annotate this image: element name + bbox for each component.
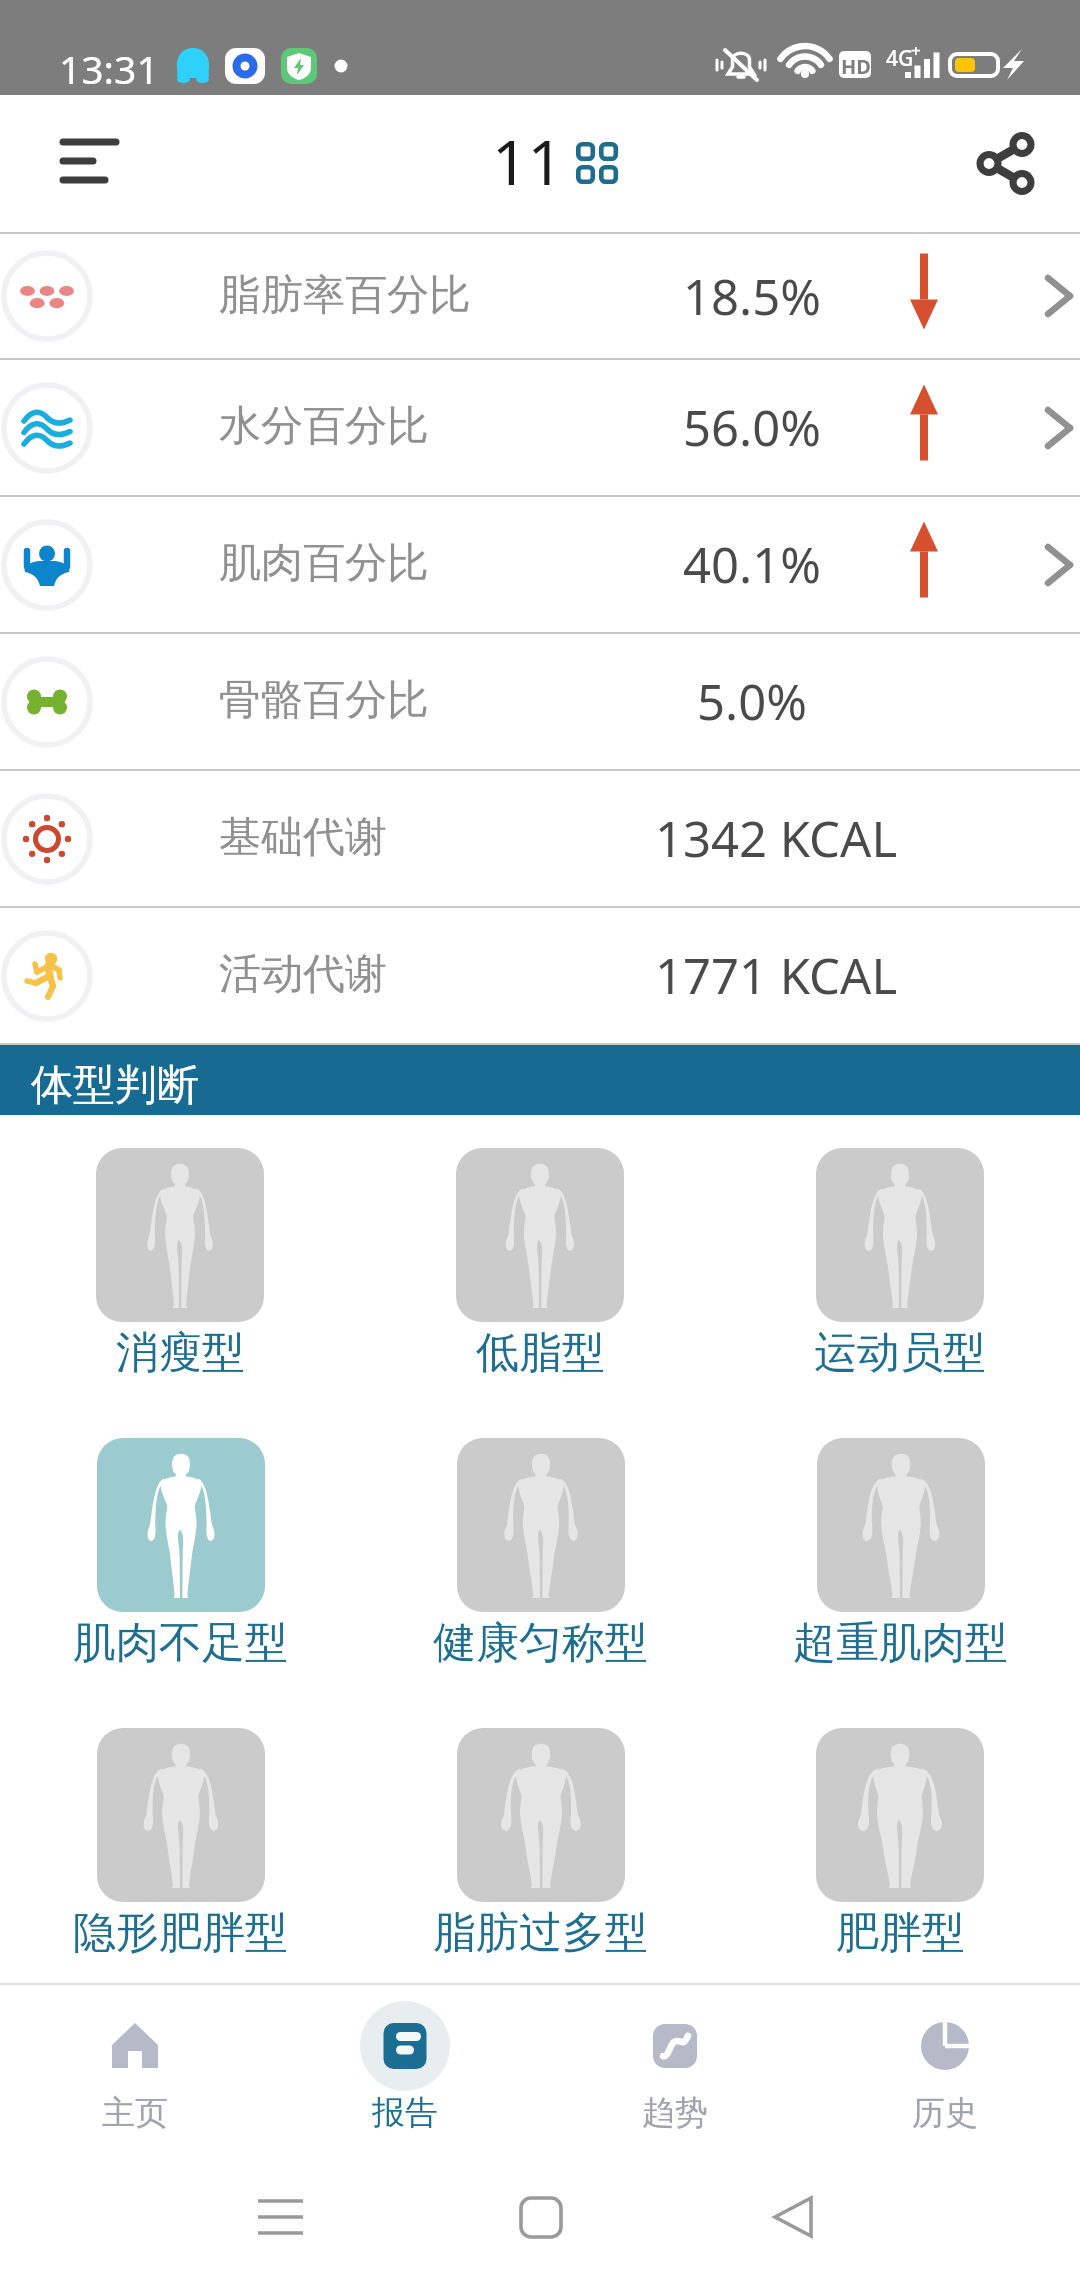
button[interactable]: Menu [0, 95, 120, 232]
staticText: 趋势 [642, 2092, 708, 2134]
button[interactable]: 健康匀称型 [370, 1438, 710, 1670]
button[interactable]: 消瘦型 [10, 1148, 350, 1380]
staticText: 1771 KCAL [581, 942, 971, 1009]
staticText: 肌肉不足型 [73, 1616, 288, 1670]
button[interactable]: Recent apps [221, 2161, 341, 2271]
staticText: 脂肪过多型 [433, 1906, 648, 1960]
staticText: 13:31 [59, 42, 159, 95]
staticText: 4G [886, 44, 914, 73]
button[interactable]: 肌肉不足型 [10, 1438, 350, 1670]
staticText: 18.5% [557, 263, 947, 330]
button[interactable]: 活动代谢 [0, 908, 1080, 1043]
staticText: 1342 KCAL [581, 805, 971, 872]
staticText: 肌肉百分比 [219, 537, 429, 590]
button[interactable]: 隐形肥胖型 [10, 1728, 350, 1960]
button[interactable]: 低脂型 [370, 1148, 710, 1380]
button[interactable]: 基础代谢 [0, 771, 1080, 906]
button[interactable]: 水分百分比 [0, 360, 1080, 495]
staticText: 水分百分比 [219, 400, 429, 453]
button[interactable]: 报告 [270, 1985, 540, 2152]
button[interactable]: 脂肪过多型 [370, 1728, 710, 1960]
button[interactable]: 骨骼百分比 [0, 634, 1080, 769]
staticText: 主页 [102, 2092, 168, 2134]
staticText: + [911, 39, 921, 62]
staticText: 5.0% [557, 668, 947, 735]
button[interactable]: 脂肪率百分比 [0, 234, 1080, 358]
button[interactable]: Switch user 11 [492, 120, 618, 204]
staticText: 脂肪率百分比 [219, 269, 471, 322]
staticText: 体型判断 [31, 1059, 199, 1112]
staticText: 肥胖型 [836, 1906, 965, 1960]
staticText: 活动代谢 [219, 948, 387, 1001]
staticText: 报告 [372, 2092, 438, 2134]
button[interactable]: 肌肉百分比 [0, 497, 1080, 632]
staticText: 历史 [912, 2092, 978, 2134]
staticText: 运动员型 [814, 1326, 986, 1380]
button[interactable]: 主页 [0, 1985, 270, 2152]
staticText: 健康匀称型 [433, 1616, 648, 1670]
staticText: 基础代谢 [219, 811, 387, 864]
button[interactable]: 超重肌肉型 [730, 1438, 1070, 1670]
button[interactable]: 趋势 [540, 1985, 810, 2152]
button[interactable]: Back [735, 2161, 855, 2271]
button[interactable]: 肥胖型 [730, 1728, 1070, 1960]
staticText: 40.1% [557, 531, 947, 598]
button[interactable]: 运动员型 [730, 1148, 1070, 1380]
staticText: 骨骼百分比 [219, 674, 429, 727]
button[interactable]: 历史 [810, 1985, 1080, 2152]
staticText: 56.0% [557, 394, 947, 461]
staticText: 超重肌肉型 [793, 1616, 1008, 1670]
staticText: 消瘦型 [116, 1326, 245, 1380]
button[interactable]: Home [480, 2161, 600, 2271]
button[interactable]: Share [950, 95, 1080, 232]
staticText: 隐形肥胖型 [73, 1906, 288, 1960]
staticText: HD [841, 53, 871, 80]
staticText: 低脂型 [476, 1326, 605, 1380]
staticText: 11 [492, 119, 563, 203]
